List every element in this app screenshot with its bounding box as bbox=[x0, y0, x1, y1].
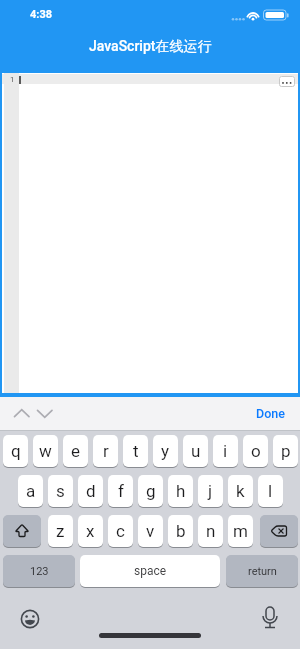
button[interactable]: o bbox=[243, 435, 268, 467]
staticText: w bbox=[39, 441, 52, 461]
staticText: y bbox=[161, 441, 170, 461]
staticText: q bbox=[11, 441, 21, 461]
staticText: k bbox=[236, 481, 245, 501]
staticText: 1 bbox=[10, 75, 15, 84]
button[interactable]: j bbox=[198, 475, 223, 507]
button[interactable]: l bbox=[258, 475, 283, 507]
staticText: p bbox=[281, 441, 291, 461]
button[interactable]: p bbox=[273, 435, 298, 467]
button[interactable]: r bbox=[93, 435, 118, 467]
staticText: t bbox=[133, 441, 139, 461]
staticText: n bbox=[206, 521, 216, 541]
button[interactable] bbox=[258, 605, 282, 633]
button[interactable]: d bbox=[78, 475, 103, 507]
button[interactable]: Done bbox=[256, 406, 285, 421]
staticText: a bbox=[26, 481, 36, 501]
staticText: space bbox=[134, 564, 167, 578]
staticText: 4:38 bbox=[30, 8, 53, 21]
staticText: f bbox=[118, 481, 124, 501]
button[interactable]: k bbox=[228, 475, 253, 507]
staticText: s bbox=[56, 481, 65, 501]
button[interactable]: n bbox=[198, 515, 223, 547]
button[interactable]: f bbox=[108, 475, 133, 507]
staticText: x bbox=[86, 521, 95, 541]
button[interactable]: t bbox=[123, 435, 148, 467]
staticText: h bbox=[176, 481, 186, 501]
staticText: u bbox=[191, 441, 201, 461]
button[interactable]: i bbox=[213, 435, 238, 467]
button[interactable]: c bbox=[108, 515, 133, 547]
button[interactable] bbox=[279, 76, 295, 87]
staticText: j bbox=[208, 481, 213, 501]
button[interactable] bbox=[10, 402, 34, 426]
button[interactable]: return bbox=[226, 555, 298, 587]
staticText: JavaScript在线运行 bbox=[89, 38, 212, 56]
staticText: v bbox=[146, 521, 155, 541]
button[interactable] bbox=[3, 515, 41, 547]
staticText: 123 bbox=[30, 565, 49, 578]
staticText: d bbox=[86, 481, 96, 501]
button[interactable]: b bbox=[168, 515, 193, 547]
button[interactable]: z bbox=[48, 515, 73, 547]
button[interactable]: m bbox=[228, 515, 253, 547]
button[interactable]: space bbox=[80, 555, 220, 587]
staticText: c bbox=[116, 521, 125, 541]
button[interactable]: u bbox=[183, 435, 208, 467]
button[interactable]: e bbox=[63, 435, 88, 467]
button[interactable]: h bbox=[168, 475, 193, 507]
button[interactable] bbox=[33, 402, 57, 426]
staticText: b bbox=[176, 521, 186, 541]
button[interactable] bbox=[18, 607, 42, 631]
button[interactable]: a bbox=[18, 475, 43, 507]
staticText: l bbox=[268, 481, 273, 501]
staticText: z bbox=[56, 521, 65, 541]
staticText: m bbox=[233, 521, 248, 541]
button[interactable]: w bbox=[33, 435, 58, 467]
button[interactable]: g bbox=[138, 475, 163, 507]
button[interactable]: x bbox=[78, 515, 103, 547]
button[interactable]: q bbox=[3, 435, 28, 467]
button[interactable] bbox=[260, 515, 298, 547]
button[interactable]: s bbox=[48, 475, 73, 507]
button[interactable]: y bbox=[153, 435, 178, 467]
staticText: o bbox=[251, 441, 261, 461]
staticText: e bbox=[71, 441, 81, 461]
staticText: i bbox=[223, 441, 228, 461]
staticText: r bbox=[103, 441, 109, 461]
button[interactable]: 123 bbox=[3, 555, 75, 587]
staticText: Done bbox=[256, 406, 285, 421]
staticText: return bbox=[248, 565, 277, 578]
staticText: g bbox=[146, 481, 156, 501]
button[interactable]: v bbox=[138, 515, 163, 547]
